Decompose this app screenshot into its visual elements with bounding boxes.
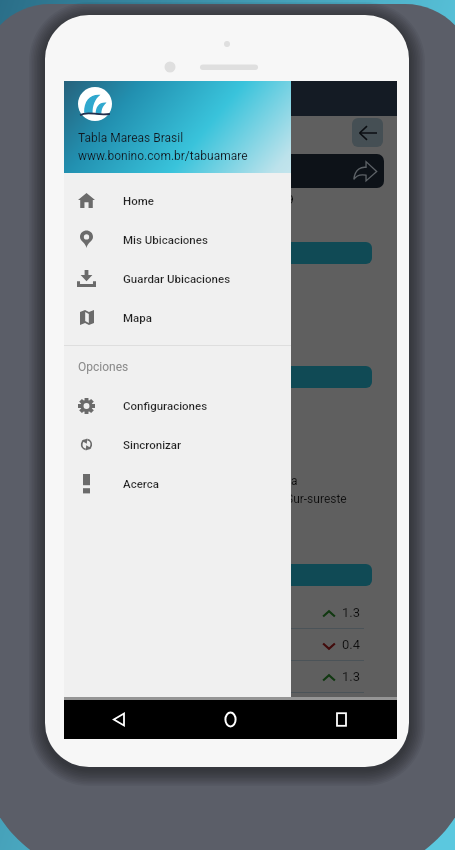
staticText: Sincronizar <box>123 438 182 451</box>
staticText: Guardar Ubicaciones <box>123 272 231 285</box>
button[interactable]: Back <box>352 118 383 147</box>
staticText: Opciones <box>78 360 129 374</box>
button[interactable]: Mis Ubicaciones <box>64 220 291 259</box>
staticText: Tabla Mareas Brasil <box>78 131 184 145</box>
button[interactable]: Home <box>175 700 286 739</box>
staticText: www.bonino.com.br/tabuamare <box>78 149 248 163</box>
button[interactable]: Configuraciones <box>64 386 291 425</box>
button[interactable]: Home <box>64 181 291 220</box>
button[interactable]: Recents <box>286 700 397 739</box>
staticText: 9 <box>287 193 294 207</box>
staticText: 0.4 <box>342 637 361 652</box>
staticText: Mapa <box>123 311 152 324</box>
button[interactable]: Guardar Ubicaciones <box>64 259 291 298</box>
button[interactable]: Sincronizar <box>64 425 291 464</box>
staticText: hPa <box>277 474 298 488</box>
button[interactable]: Acerca <box>64 464 291 503</box>
staticText: Configuraciones <box>123 399 208 412</box>
staticText: Acerca <box>123 477 159 490</box>
button[interactable]: Share <box>234 154 384 188</box>
button[interactable]: Back <box>64 700 175 739</box>
staticText: 1.3 <box>342 669 361 684</box>
staticText: Mis Ubicaciones <box>123 233 208 246</box>
staticText: 1.3 <box>342 605 361 620</box>
staticText: Home <box>123 194 154 207</box>
staticText: Sur-sureste <box>286 492 347 506</box>
button[interactable]: Mapa <box>64 298 291 337</box>
